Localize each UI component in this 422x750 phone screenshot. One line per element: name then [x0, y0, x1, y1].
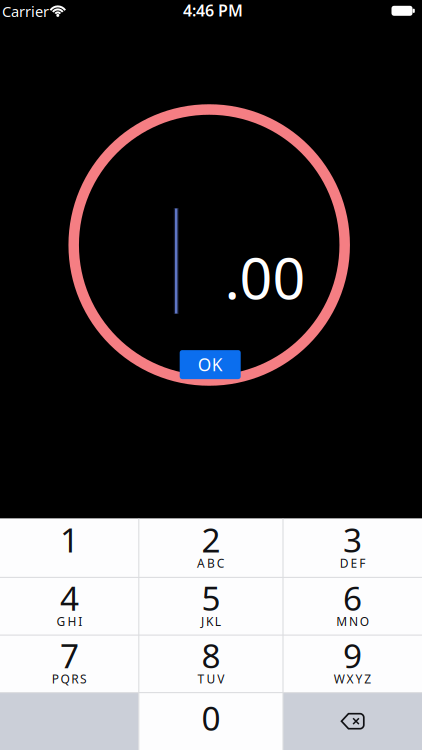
button[interactable]: 0 — [139, 693, 283, 750]
staticText: Carrier — [2, 2, 49, 21]
staticText: PQRS — [52, 671, 87, 687]
staticText: 5 — [201, 576, 220, 620]
button[interactable]: OK — [180, 350, 241, 379]
button[interactable]: 2 — [139, 519, 283, 577]
staticText: TUV — [198, 671, 224, 687]
staticText: ABC — [197, 555, 225, 571]
staticText: WXYZ — [334, 671, 371, 687]
staticText: 2 — [201, 517, 220, 562]
staticText: GHI — [57, 613, 82, 629]
staticText: 7 — [60, 633, 79, 677]
button[interactable]: 4 — [0, 577, 139, 635]
staticText: 4:46 PM — [183, 0, 243, 21]
button[interactable]: 1 — [0, 519, 139, 577]
button[interactable]: 9 — [283, 635, 422, 693]
button[interactable]: 3 — [283, 519, 422, 577]
button[interactable]: 5 — [139, 577, 283, 635]
button[interactable]: 8 — [139, 635, 283, 693]
staticText: 0 — [201, 696, 220, 740]
staticText: 3 — [343, 517, 362, 562]
staticText: OK — [198, 353, 223, 376]
staticText: 6 — [343, 576, 362, 620]
button[interactable]: Delete — [283, 693, 422, 750]
button[interactable]: 6 — [283, 577, 422, 635]
staticText: 1 — [60, 517, 79, 562]
staticText: MNO — [336, 613, 369, 629]
staticText: 9 — [343, 633, 362, 677]
button[interactable]: 7 — [0, 635, 139, 693]
staticText: .00 — [224, 239, 305, 315]
staticText: DEF — [340, 555, 365, 571]
staticText: 8 — [201, 633, 220, 677]
staticText: JKL — [201, 613, 221, 629]
staticText: 4 — [60, 576, 79, 620]
